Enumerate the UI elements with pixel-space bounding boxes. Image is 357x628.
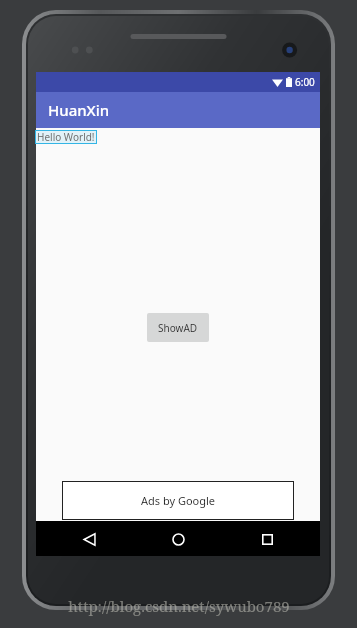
staticText: HuanXin	[48, 100, 110, 120]
button[interactable]: Ads by Google	[62, 481, 294, 520]
button[interactable]: Home	[161, 522, 195, 556]
button[interactable]: Recent apps	[250, 522, 284, 556]
button[interactable]: ShowAD	[147, 313, 209, 342]
button[interactable]: Back	[72, 522, 106, 556]
staticText: 6:00	[295, 75, 315, 89]
staticText: Ads by Google	[141, 493, 216, 508]
staticText: http://blog.csdn.net/sywubo789	[68, 596, 290, 616]
button[interactable]: Hello World!	[37, 130, 95, 144]
staticText: Hello World!	[37, 130, 95, 144]
staticText: ShowAD	[158, 321, 198, 335]
